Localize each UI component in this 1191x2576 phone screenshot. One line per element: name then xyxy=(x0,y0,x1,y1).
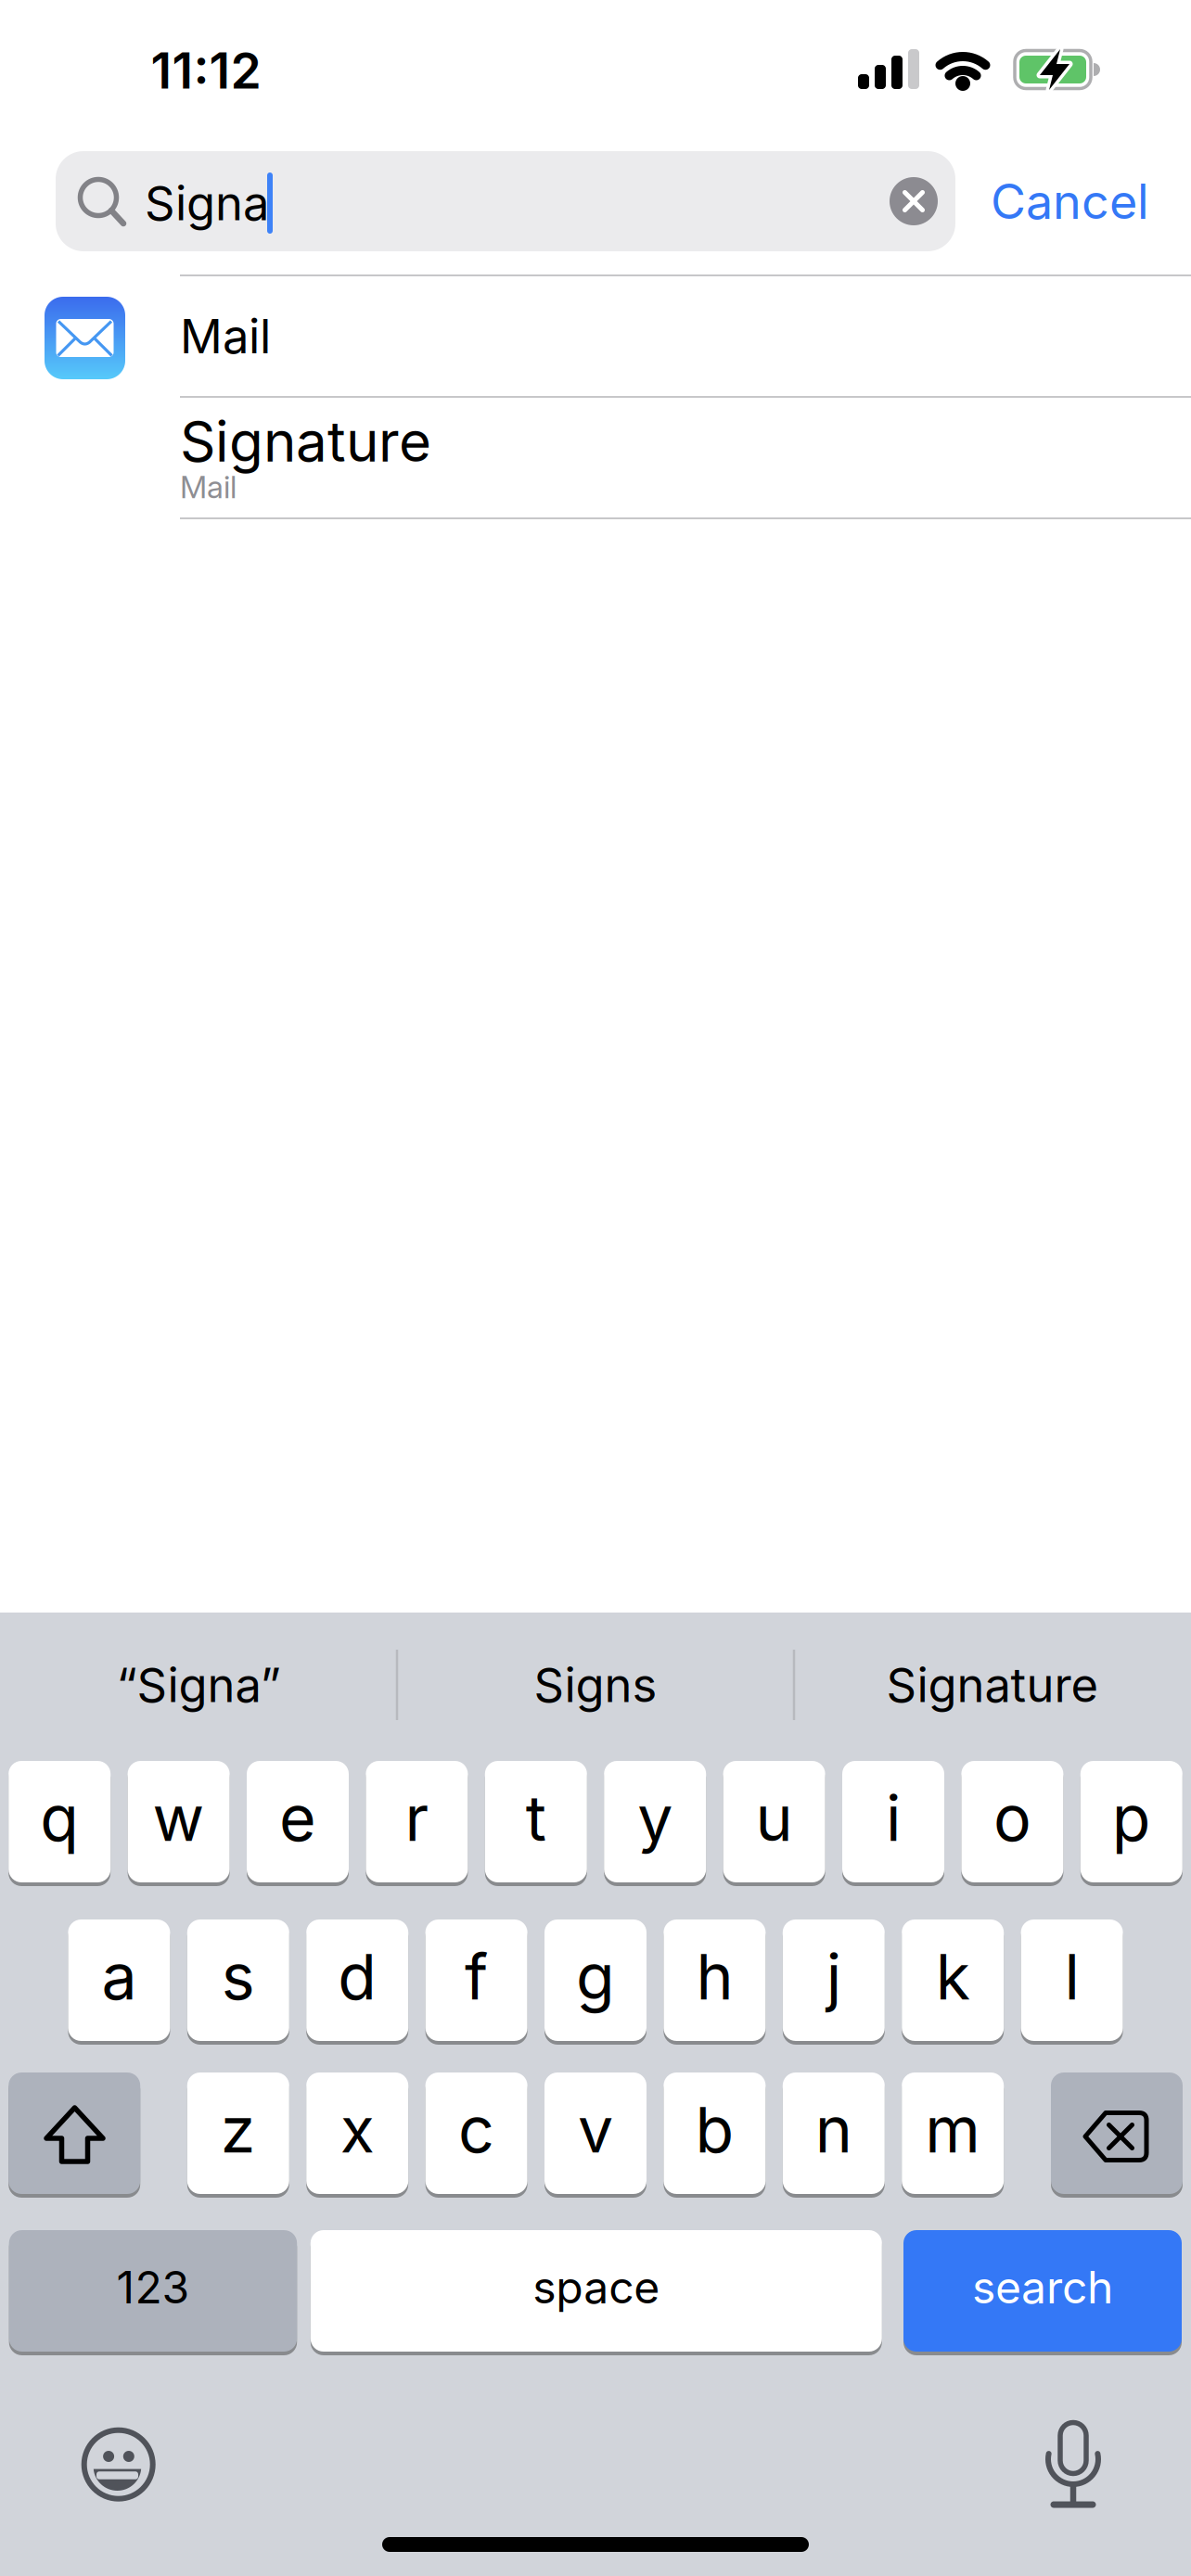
button[interactable]: o xyxy=(961,1759,1063,1884)
staticText: y xyxy=(637,1780,673,1856)
button[interactable]: n xyxy=(783,2071,885,2196)
staticText: m xyxy=(925,2091,981,2168)
button[interactable]: r xyxy=(366,1759,468,1884)
button[interactable]: x xyxy=(306,2071,408,2196)
staticText: h xyxy=(696,1938,733,2015)
staticText: w xyxy=(153,1780,205,1856)
staticText: o xyxy=(993,1780,1031,1856)
button[interactable]: w xyxy=(128,1759,230,1884)
staticText: “Signa” xyxy=(116,1656,281,1713)
button[interactable]: l xyxy=(1021,1918,1123,2043)
staticText: p xyxy=(1112,1780,1151,1856)
staticText: t xyxy=(526,1780,546,1856)
staticText: q xyxy=(40,1780,79,1856)
button[interactable]: Signature xyxy=(0,398,1191,517)
staticText: s xyxy=(222,1938,255,2015)
button[interactable]: m xyxy=(902,2071,1004,2196)
button[interactable]: h xyxy=(664,1918,766,2043)
button[interactable]: p xyxy=(1080,1759,1182,1884)
staticText: b xyxy=(695,2091,734,2168)
staticText: j xyxy=(826,1938,841,2015)
staticText: Signs xyxy=(534,1656,657,1713)
button[interactable]: d xyxy=(306,1918,408,2043)
button[interactable]: f xyxy=(425,1918,527,2043)
staticText: 123 xyxy=(116,2260,190,2314)
button[interactable] xyxy=(9,2071,140,2196)
button[interactable]: space xyxy=(311,2228,882,2353)
button[interactable]: search xyxy=(903,2228,1182,2353)
button[interactable] xyxy=(1036,2422,1110,2507)
staticText: Signature xyxy=(886,1656,1099,1713)
staticText: search xyxy=(972,2260,1113,2314)
staticText: a xyxy=(101,1938,137,2015)
staticText: f xyxy=(465,1938,488,2015)
button[interactable] xyxy=(56,151,955,251)
button[interactable]: i xyxy=(842,1759,944,1884)
staticText: Mail xyxy=(180,308,271,365)
button[interactable]: u xyxy=(723,1759,825,1884)
button[interactable]: v xyxy=(544,2071,647,2196)
button[interactable]: k xyxy=(902,1918,1004,2043)
button[interactable]: “Signa” xyxy=(116,1656,281,1713)
button[interactable]: q xyxy=(9,1759,111,1884)
button[interactable]: Cancel xyxy=(0,0,1191,2576)
button[interactable]: Signature xyxy=(886,1656,1099,1713)
button[interactable] xyxy=(81,2427,156,2502)
staticText: n xyxy=(815,2091,852,2168)
button[interactable]: e xyxy=(247,1759,349,1884)
staticText: r xyxy=(405,1780,429,1856)
button[interactable]: j xyxy=(783,1918,885,2043)
button[interactable]: t xyxy=(485,1759,587,1884)
staticText: Mail xyxy=(180,468,237,505)
staticText: g xyxy=(576,1938,615,2015)
staticText: space xyxy=(533,2260,660,2314)
button[interactable] xyxy=(890,177,938,225)
staticText: l xyxy=(1064,1938,1079,2015)
staticText: k xyxy=(936,1938,970,2015)
staticText: Signa xyxy=(145,175,269,231)
staticText: d xyxy=(338,1938,377,2015)
button[interactable]: Signs xyxy=(534,1656,657,1713)
staticText: c xyxy=(458,2091,494,2168)
button[interactable]: s xyxy=(187,1918,289,2043)
button[interactable]: y xyxy=(604,1759,706,1884)
button[interactable]: 123 xyxy=(9,2228,297,2353)
button[interactable]: Mail xyxy=(0,276,1191,396)
button[interactable]: b xyxy=(664,2071,766,2196)
staticText: Signature xyxy=(180,408,431,475)
staticText: i xyxy=(886,1780,901,1856)
staticText: Cancel xyxy=(991,172,1149,230)
staticText: e xyxy=(279,1780,316,1856)
staticText: u xyxy=(756,1780,793,1856)
button[interactable]: z xyxy=(187,2071,289,2196)
button[interactable]: a xyxy=(68,1918,170,2043)
staticText: 11:12 xyxy=(151,41,261,100)
button[interactable]: g xyxy=(544,1918,647,2043)
staticText: v xyxy=(578,2091,613,2168)
staticText: x xyxy=(340,2091,374,2168)
button[interactable] xyxy=(1051,2071,1183,2196)
staticText: z xyxy=(221,2091,256,2168)
button[interactable]: c xyxy=(425,2071,527,2196)
